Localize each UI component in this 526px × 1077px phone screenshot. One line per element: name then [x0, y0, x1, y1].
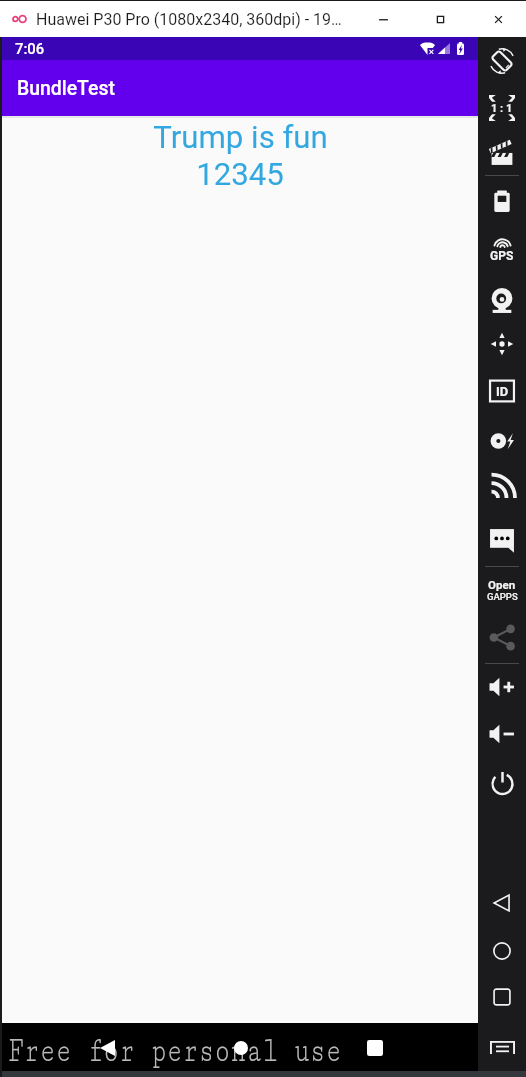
button[interactable]: Back — [478, 882, 526, 924]
staticText: 1 : 1 — [491, 102, 513, 115]
button[interactable]: Directional pad — [478, 323, 526, 365]
staticText: GAPPS — [487, 591, 518, 602]
button[interactable]: Battery — [478, 180, 526, 222]
button[interactable]: Location GPS — [478, 225, 526, 267]
staticText: GPS — [490, 249, 514, 262]
staticText: BundleTest — [17, 77, 115, 100]
button[interactable]: Open GAPPS — [478, 578, 526, 620]
button[interactable]: Share — [478, 616, 526, 658]
button[interactable]: Home — [478, 930, 526, 972]
button[interactable]: Virtual sensors — [478, 419, 526, 461]
staticText: ID — [496, 384, 509, 398]
button[interactable]: Power — [478, 762, 526, 804]
staticText: Open — [488, 578, 516, 591]
button[interactable]: Screen record — [478, 133, 526, 175]
button[interactable]: Volume down — [478, 713, 526, 755]
button[interactable]: Home — [217, 1023, 265, 1072]
button[interactable]: Volume up — [478, 666, 526, 708]
button[interactable]: Back — [83, 1023, 131, 1072]
staticText: Trump is fun — [153, 119, 328, 156]
button[interactable]: Overview — [478, 976, 526, 1018]
button[interactable]: Messages — [478, 519, 526, 561]
staticText: 7:06 — [15, 40, 45, 57]
button[interactable]: Phone ID — [478, 370, 526, 412]
button[interactable]: Recents — [351, 1023, 399, 1072]
button[interactable]: Zoom 1 to 1 — [478, 87, 526, 129]
button[interactable]: Close — [475, 1, 521, 37]
button[interactable]: Maximize — [417, 1, 463, 37]
button[interactable]: Menu — [478, 1026, 526, 1068]
staticText: Huawei P30 Pro (1080x2340, 360dpi) - 19… — [36, 10, 342, 29]
button[interactable]: Minimize — [360, 1, 406, 37]
staticText: Free for personal use — [8, 1030, 342, 1071]
staticText: 12345 — [196, 156, 284, 193]
button[interactable]: Cellular — [478, 465, 526, 507]
button[interactable]: Camera — [478, 280, 526, 322]
button[interactable]: Rotate — [478, 40, 526, 82]
